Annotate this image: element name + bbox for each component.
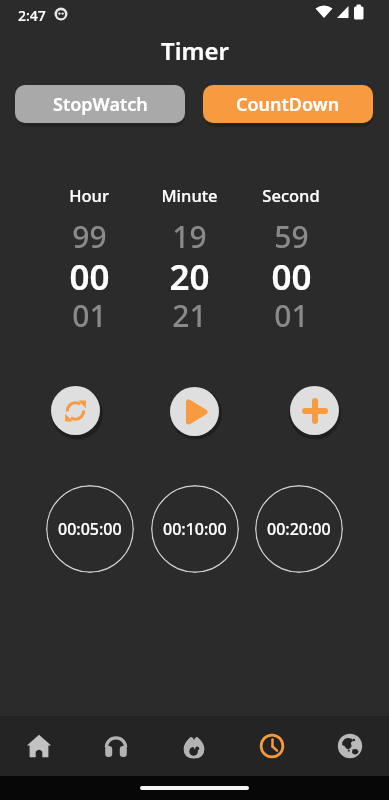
button[interactable] [155, 716, 233, 776]
button[interactable] [51, 386, 100, 435]
staticText: 2:47 [18, 6, 46, 25]
button[interactable]: CountDown [203, 85, 373, 123]
staticText: 21 [172, 295, 207, 335]
button[interactable] [311, 716, 389, 776]
staticText: 00:10:00 [163, 518, 227, 540]
staticText: 59 [274, 216, 309, 256]
button[interactable] [77, 716, 155, 776]
staticText: CountDown [236, 92, 340, 117]
button[interactable]: 00:20:00 [255, 485, 343, 573]
staticText: Minute [161, 184, 218, 206]
button[interactable] [290, 386, 339, 435]
staticText: 19 [172, 216, 207, 256]
staticText: Hour [69, 184, 109, 206]
staticText: 99 [72, 216, 107, 256]
button[interactable]: StopWatch [15, 85, 185, 123]
staticText: 20 [169, 253, 210, 293]
button[interactable] [170, 387, 219, 436]
staticText: Timer [161, 34, 229, 67]
button[interactable] [0, 716, 77, 776]
staticText: 00 [69, 253, 110, 293]
staticText: StopWatch [53, 92, 148, 117]
button[interactable]: 00:05:00 [46, 485, 134, 573]
button[interactable] [233, 716, 311, 776]
staticText: 00 [271, 253, 312, 293]
staticText: 00:20:00 [267, 518, 331, 540]
staticText: 01 [72, 295, 107, 335]
staticText: 00:05:00 [58, 518, 122, 540]
staticText: 01 [274, 295, 309, 335]
button[interactable]: 00:10:00 [151, 485, 239, 573]
staticText: Second [262, 184, 320, 206]
